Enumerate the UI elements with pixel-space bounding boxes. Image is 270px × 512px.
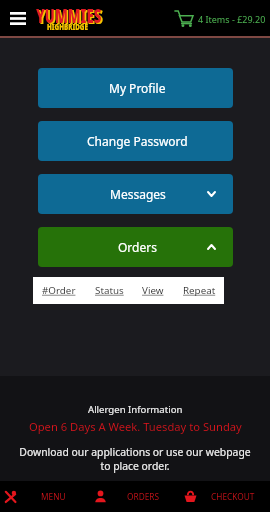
staticText: My Profile (109, 80, 166, 96)
button[interactable]: ORDERS (90, 481, 180, 512)
button[interactable]: Open navigation menu (0, 0, 36, 36)
staticText: MENU (41, 491, 66, 502)
staticText: HIGHBRIDGE (47, 21, 88, 33)
staticText: 4 Items - £29.20 (198, 13, 266, 25)
button[interactable]: Messages (38, 174, 233, 214)
button[interactable]: Status (95, 284, 124, 297)
button[interactable]: #Order (42, 284, 76, 297)
staticText: Allergen Information (88, 403, 183, 416)
staticText: ORDERS (127, 491, 160, 502)
button[interactable]: MENU (0, 481, 90, 512)
button[interactable]: Orders (38, 227, 233, 267)
staticText: Change Password (87, 133, 188, 149)
button[interactable]: 4 Items - £29.20 (174, 10, 270, 27)
staticText: Download our applications or use our web… (19, 445, 251, 473)
staticText: Orders (118, 239, 157, 255)
button[interactable]: Repeat (183, 284, 216, 297)
staticText: Open 6 Days A Week. Tuesday to Sunday (29, 419, 242, 434)
staticText: Messages (110, 186, 166, 202)
button[interactable]: CHECKOUT (180, 481, 270, 512)
button[interactable]: My Profile (38, 68, 233, 108)
staticText: CHECKOUT (211, 491, 255, 502)
staticText: YUMMIES (36, 3, 102, 29)
button[interactable]: View (142, 284, 164, 297)
staticText: YUMMIES (37, 4, 103, 30)
button[interactable]: Change Password (38, 121, 233, 161)
